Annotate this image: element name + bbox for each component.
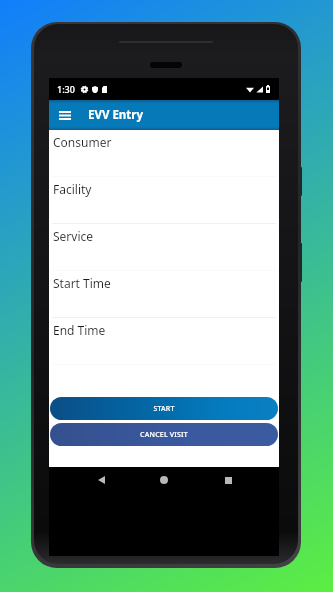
staticText: End Time xyxy=(53,322,106,338)
button[interactable]: Start Time xyxy=(49,271,279,318)
button[interactable]: Home xyxy=(152,468,176,492)
staticText: START xyxy=(153,404,175,414)
button[interactable]: CANCEL VISIT xyxy=(50,423,278,446)
button[interactable]: Facility xyxy=(49,177,279,224)
staticText: Facility xyxy=(53,181,92,197)
staticText: CANCEL VISIT xyxy=(140,430,188,440)
staticText: EVV Entry xyxy=(88,107,143,123)
staticText: Consumer xyxy=(53,134,112,150)
staticText: Start Time xyxy=(53,275,111,291)
button[interactable]: Back xyxy=(89,468,113,492)
staticText: Service xyxy=(53,228,94,244)
button[interactable]: Consumer xyxy=(49,130,279,177)
button[interactable]: Service xyxy=(49,224,279,271)
button[interactable]: Recent apps xyxy=(216,468,240,492)
button[interactable]: Open navigation menu xyxy=(54,104,76,126)
button[interactable]: START xyxy=(50,397,278,420)
button[interactable]: End Time xyxy=(49,318,279,365)
staticText: 1:30 xyxy=(57,83,75,95)
